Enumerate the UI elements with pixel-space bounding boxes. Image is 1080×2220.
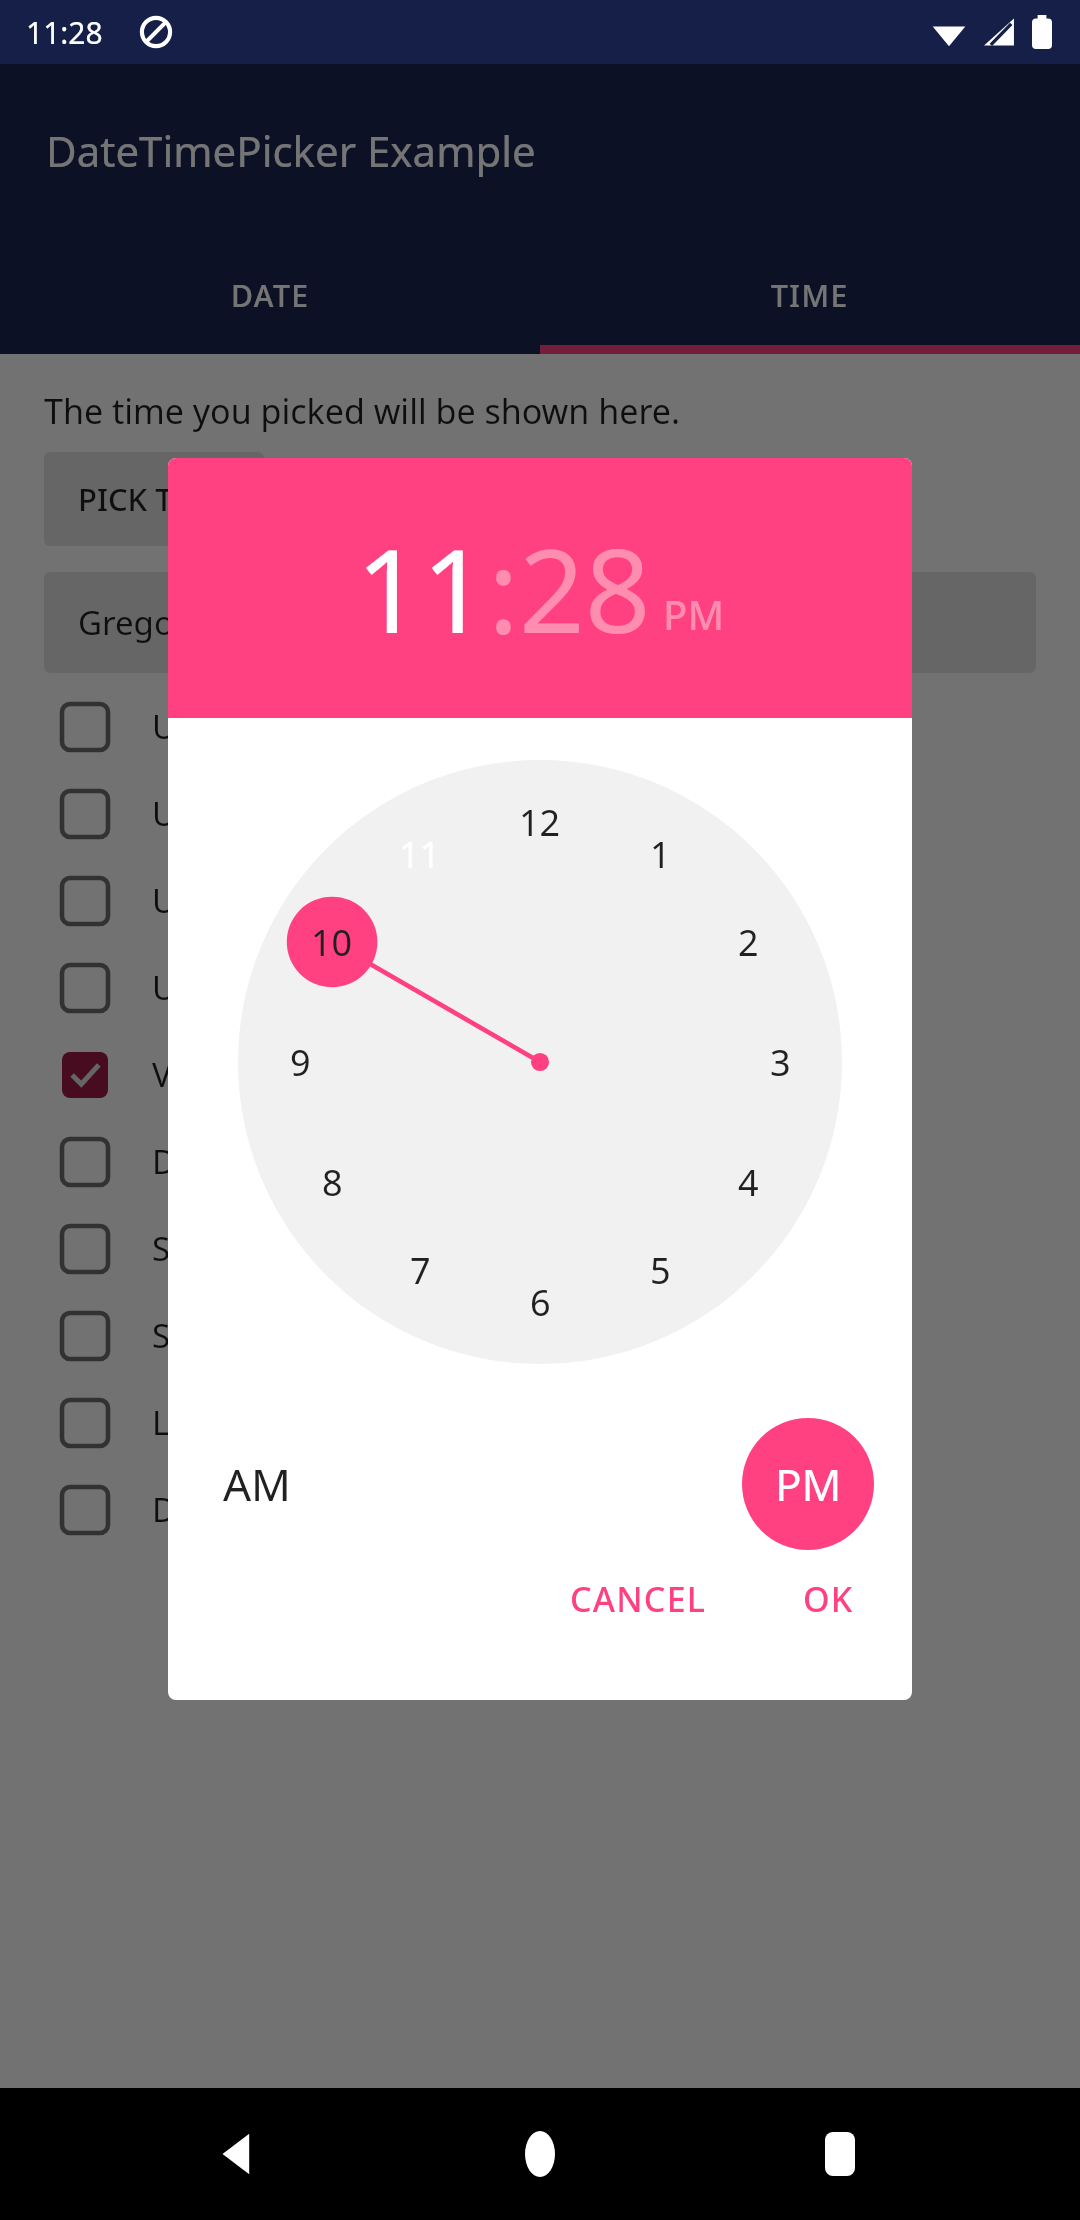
button[interactable]: Limit selectable times (0, 1379, 1080, 1466)
staticText: OK (803, 1576, 854, 1622)
staticText: 11 (356, 510, 488, 667)
button[interactable]: AM (202, 1429, 312, 1539)
button[interactable]: DATE (0, 236, 540, 354)
staticText: : (488, 510, 519, 667)
staticText: CANCEL (570, 1576, 707, 1622)
staticText: 1 (650, 830, 671, 879)
staticText: 11:28 (26, 12, 103, 53)
button[interactable]: 7 (377, 1227, 463, 1313)
button[interactable]: 4 (705, 1139, 791, 1225)
button[interactable]: Home (480, 2094, 600, 2214)
staticText: Dismiss on pause (152, 1139, 423, 1184)
staticText: 2 (738, 918, 759, 967)
staticText: Use system theme (152, 878, 438, 923)
button[interactable]: TIME (540, 236, 1080, 354)
staticText: PM (775, 1454, 842, 1514)
button[interactable]: Use system theme (0, 857, 1080, 944)
button[interactable]: 28 (519, 510, 651, 667)
staticText: The time you picked will be shown here. (44, 388, 681, 434)
staticText: 12 (519, 798, 561, 847)
staticText: Use custom colors (152, 791, 437, 836)
staticText: DateTimePicker Example (46, 122, 536, 179)
staticText: 7 (410, 1246, 431, 1295)
button[interactable]: PM (663, 587, 725, 641)
button[interactable]: 5 (617, 1227, 703, 1313)
button[interactable]: 6 (497, 1259, 583, 1345)
staticText: 9 (290, 1038, 311, 1087)
staticText: TIME (771, 275, 849, 316)
staticText: 10 (311, 918, 353, 967)
button[interactable]: Show title (0, 1205, 1080, 1292)
button[interactable]: Use 24-hour time (0, 683, 1080, 770)
staticText: 8 (322, 1158, 343, 1207)
button[interactable]: 1 (617, 811, 703, 897)
button[interactable]: Dismiss on pause (0, 1118, 1080, 1205)
staticText: 6 (530, 1278, 551, 1327)
staticText: Gregorian Calendar (78, 600, 383, 645)
staticText: Limit selectable times (152, 1400, 488, 1445)
staticText: PM (663, 587, 725, 641)
button[interactable]: 3 (737, 1019, 823, 1105)
button[interactable]: Disable specific times (0, 1466, 1080, 1553)
button[interactable]: CANCEL (548, 1562, 729, 1636)
button[interactable]: PICK TIME (44, 452, 264, 546)
staticText: Use 24-hour time (152, 704, 421, 749)
button[interactable]: 8 (289, 1139, 375, 1225)
staticText: PICK TIME (78, 478, 230, 520)
staticText: 28 (519, 510, 651, 667)
staticText: Disable specific times (152, 1487, 484, 1532)
button[interactable]: Use dark theme (0, 944, 1080, 1031)
other: Do not disturb (140, 16, 172, 48)
button[interactable]: PM (742, 1418, 874, 1550)
button[interactable]: Use custom colors (0, 770, 1080, 857)
button[interactable]: Show version (0, 1292, 1080, 1379)
staticText: 5 (650, 1246, 671, 1295)
button[interactable]: Vibrate (0, 1031, 1080, 1118)
button[interactable]: 9 (257, 1019, 343, 1105)
button[interactable]: OK (781, 1562, 876, 1636)
staticText: 4 (738, 1158, 759, 1207)
button[interactable]: Recent apps (780, 2094, 900, 2214)
button[interactable]: 2 (705, 899, 791, 985)
button[interactable]: 10 (289, 899, 375, 985)
button[interactable]: 11 (356, 510, 488, 667)
staticText: Show version (152, 1313, 359, 1358)
staticText: Show title (152, 1226, 304, 1271)
staticText: DATE (231, 275, 310, 316)
button[interactable]: 12 (497, 779, 583, 865)
staticText: Use dark theme (152, 965, 399, 1010)
button[interactable]: Back (180, 2094, 300, 2214)
staticText: 11 (399, 830, 441, 879)
staticText: Vibrate (152, 1052, 263, 1097)
button[interactable]: Gregorian Calendar (44, 572, 1036, 673)
staticText: 3 (770, 1038, 791, 1087)
staticText: AM (223, 1454, 292, 1514)
